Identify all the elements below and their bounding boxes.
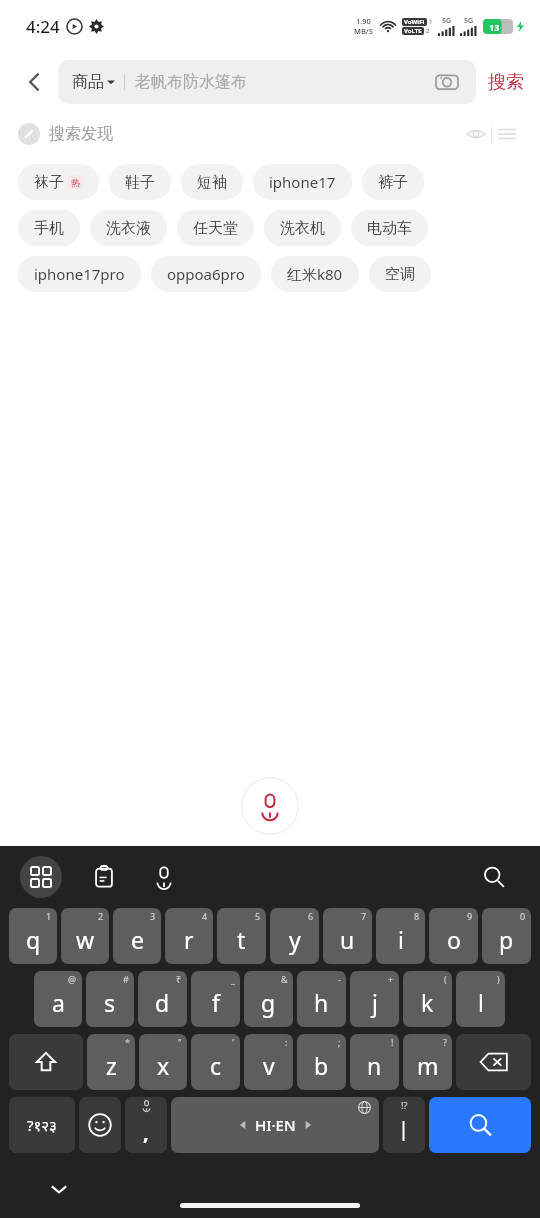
staticText: 手机 — [34, 219, 64, 238]
button[interactable]: 6 — [270, 908, 319, 964]
button[interactable]: , — [125, 1097, 167, 1153]
button[interactable]: ' — [191, 1034, 240, 1090]
button[interactable]: + — [350, 971, 399, 1027]
staticText: oppoa6pro — [167, 264, 245, 284]
staticText: 5 — [255, 910, 261, 922]
staticText: iphone17pro — [34, 264, 125, 284]
staticText: p — [499, 924, 514, 955]
button[interactable]: 9 — [429, 908, 478, 964]
staticText: 4 — [202, 910, 208, 922]
button[interactable]: !? — [383, 1097, 425, 1153]
staticText: 短袖 — [197, 173, 227, 192]
button[interactable]: oppoa6pro — [151, 256, 261, 292]
button[interactable]: Back — [14, 61, 56, 103]
button[interactable]: 手机 — [18, 210, 80, 246]
button[interactable]: ₹ — [138, 971, 187, 1027]
staticText: 热 — [71, 177, 80, 188]
button[interactable]: & — [244, 971, 293, 1027]
staticText: 3 — [150, 910, 156, 922]
staticText: * — [125, 1036, 130, 1048]
staticText: z — [106, 1050, 117, 1081]
staticText: b — [314, 1050, 329, 1081]
button[interactable]: 5 — [217, 908, 266, 964]
staticText: 7 — [361, 910, 367, 922]
button[interactable]: 洗衣机 — [264, 210, 341, 246]
staticText: MB/S — [354, 26, 373, 36]
staticText: 1 — [46, 910, 52, 922]
staticText: & — [281, 973, 288, 985]
button[interactable]: iphone17 — [253, 164, 352, 200]
button[interactable]: Camera search — [432, 67, 462, 97]
button[interactable]: 洗衣液 — [90, 210, 167, 246]
button[interactable]: : — [244, 1034, 293, 1090]
staticText: ?१२३ — [27, 1115, 57, 1135]
staticText: 洗衣液 — [106, 219, 151, 238]
staticText: i — [398, 924, 404, 955]
button[interactable]: Emoji — [79, 1097, 121, 1153]
button[interactable]: iphone17pro — [18, 256, 141, 292]
button[interactable]: 鞋子 — [109, 164, 171, 200]
button[interactable]: 电动车 — [351, 210, 428, 246]
button[interactable]: Voice input — [146, 859, 182, 895]
staticText: w — [76, 924, 95, 955]
button[interactable]: ; — [297, 1034, 346, 1090]
staticText: l — [478, 987, 484, 1018]
button[interactable]: Keyboard menu — [20, 856, 62, 898]
button[interactable]: 8 — [376, 908, 425, 964]
button[interactable]: 商品 — [58, 60, 476, 104]
button[interactable]: ? — [403, 1034, 452, 1090]
button[interactable]: 任天堂 — [177, 210, 254, 246]
staticText: d — [155, 987, 170, 1018]
button[interactable]: 2 — [61, 908, 109, 964]
staticText: ! — [391, 1036, 394, 1048]
button[interactable]: # — [86, 971, 134, 1027]
button[interactable]: 裤子 — [362, 164, 424, 200]
staticText: 1 — [429, 18, 433, 26]
button[interactable]: Search — [429, 1097, 531, 1153]
staticText: @ — [68, 973, 77, 985]
button[interactable]: 空调 — [369, 256, 431, 292]
button[interactable]: Search keyboard — [476, 859, 512, 895]
button[interactable]: 红米k80 — [271, 256, 359, 292]
button[interactable]: 4 — [165, 908, 213, 964]
button[interactable]: @ — [34, 971, 82, 1027]
button[interactable]: * — [87, 1034, 135, 1090]
button[interactable]: 7 — [323, 908, 372, 964]
staticText: v — [263, 1050, 275, 1081]
staticText: 9 — [467, 910, 473, 922]
button[interactable]: ! — [350, 1034, 399, 1090]
staticText: " — [178, 1036, 182, 1048]
staticText: 空调 — [385, 265, 415, 284]
staticText: 裤子 — [378, 173, 408, 192]
button[interactable]: - — [297, 971, 346, 1027]
button[interactable]: _ — [191, 971, 240, 1027]
button[interactable]: Toggle visibility — [461, 119, 491, 149]
staticText: f — [212, 987, 220, 1018]
staticText: : — [285, 1036, 288, 1048]
button[interactable]: ?१२३ — [9, 1097, 75, 1153]
button[interactable]: 短袖 — [181, 164, 243, 200]
button[interactable]: 1 — [9, 908, 57, 964]
button[interactable]: 3 — [113, 908, 161, 964]
button[interactable]: Voice search — [241, 777, 299, 835]
staticText: j — [372, 987, 378, 1018]
staticText: 8 — [414, 910, 420, 922]
staticText: r — [184, 924, 194, 955]
staticText: 13 — [489, 21, 500, 33]
button[interactable]: 袜子 — [18, 164, 99, 200]
button[interactable]: Hide keyboard — [42, 1172, 76, 1206]
staticText: 4:24 — [26, 15, 60, 38]
staticText: 任天堂 — [193, 219, 238, 238]
staticText: 2 — [426, 27, 430, 35]
button[interactable]: More options — [492, 119, 522, 149]
button[interactable]: ( — [403, 971, 452, 1027]
button[interactable]: " — [139, 1034, 187, 1090]
button[interactable]: 搜索 — [476, 71, 526, 94]
button[interactable]: Space — [171, 1097, 379, 1153]
button[interactable]: Backspace — [456, 1034, 531, 1090]
button[interactable]: 0 — [482, 908, 531, 964]
button[interactable]: Clipboard — [86, 859, 122, 895]
staticText: iphone17 — [269, 172, 336, 192]
button[interactable]: ) — [456, 971, 505, 1027]
button[interactable]: Shift — [9, 1034, 83, 1090]
